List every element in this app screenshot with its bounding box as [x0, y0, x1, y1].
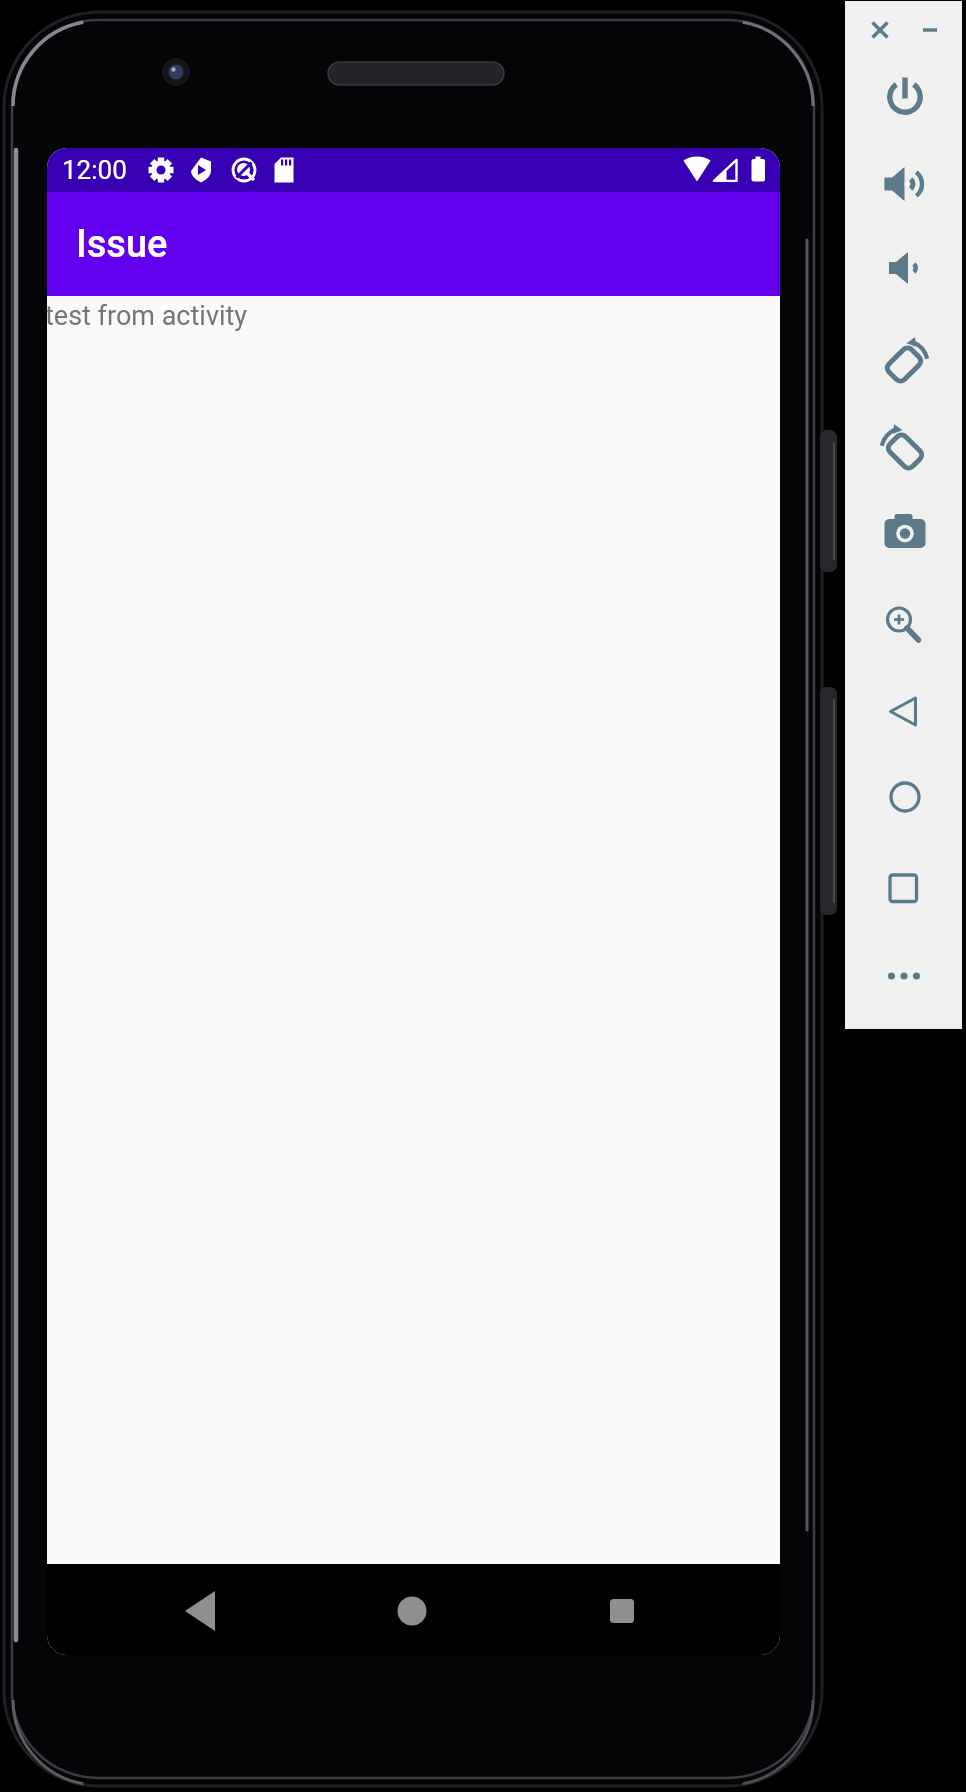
button[interactable]	[881, 509, 929, 557]
button[interactable]	[881, 337, 929, 385]
staticText: 12:00	[62, 155, 127, 185]
button[interactable]	[879, 244, 927, 292]
button[interactable]	[879, 598, 927, 646]
button[interactable]	[880, 160, 928, 208]
button[interactable]	[880, 952, 928, 1000]
staticText: test from activity	[47, 300, 248, 332]
button[interactable]	[590, 1579, 654, 1643]
button[interactable]	[168, 1579, 232, 1643]
button[interactable]	[881, 773, 929, 821]
button[interactable]	[880, 424, 928, 472]
button[interactable]	[912, 12, 948, 48]
button[interactable]	[862, 12, 898, 48]
button[interactable]	[380, 1579, 444, 1643]
button[interactable]	[881, 73, 929, 121]
button[interactable]	[880, 687, 928, 735]
staticText: Issue	[76, 222, 168, 267]
button[interactable]	[879, 864, 927, 912]
